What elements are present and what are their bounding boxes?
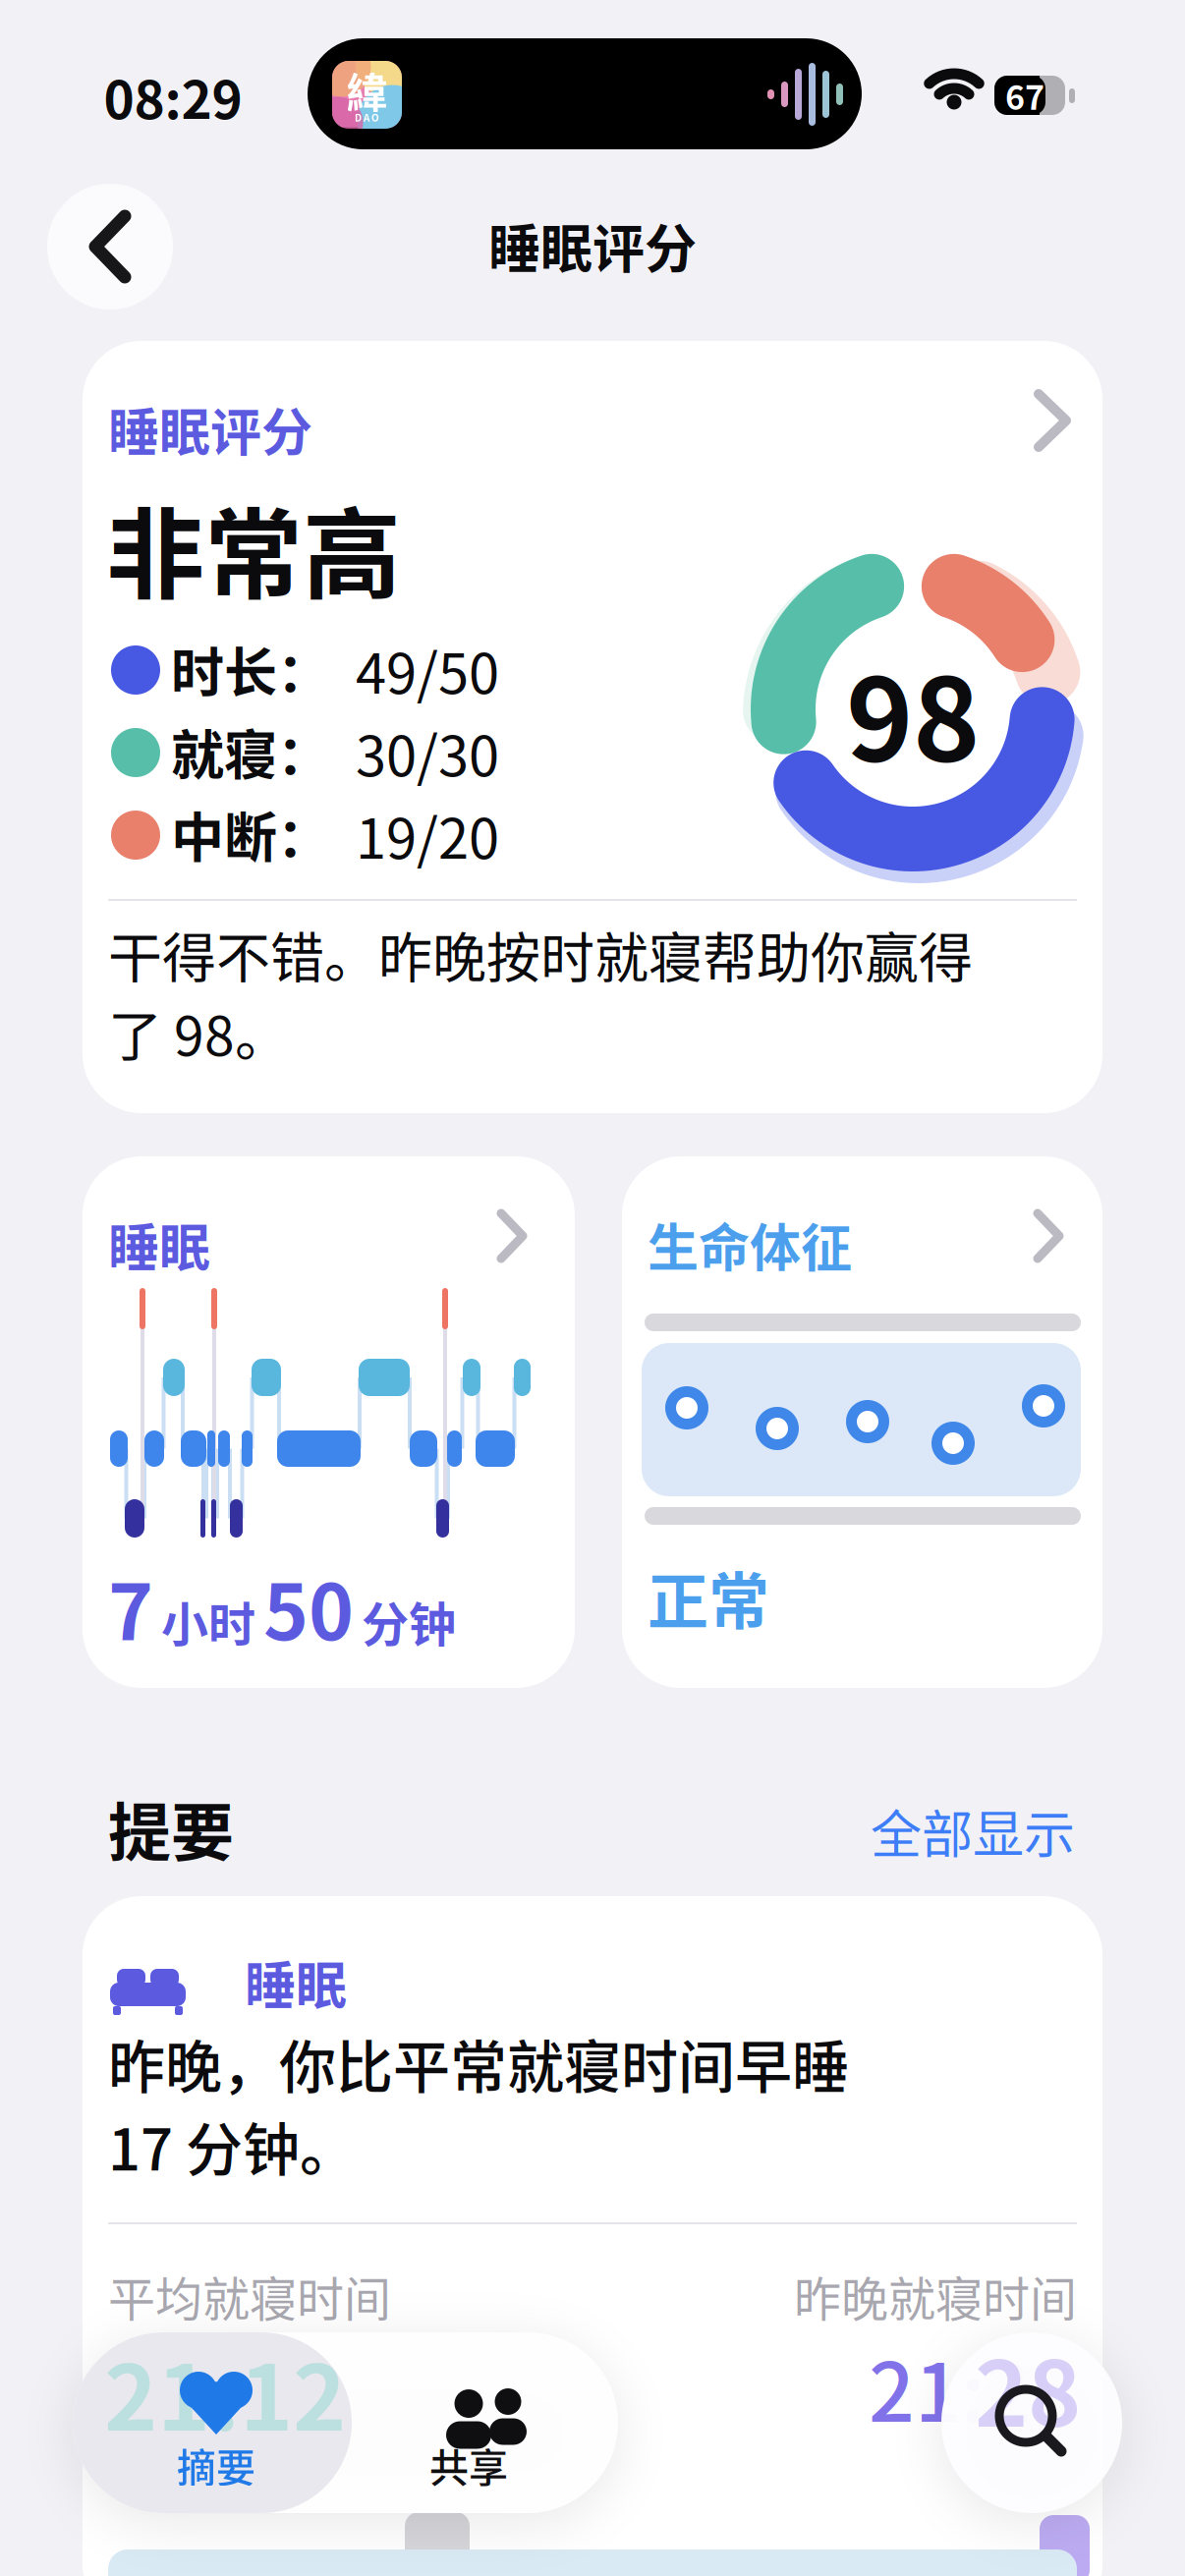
button[interactable]: 睡眠: [83, 1896, 1102, 2576]
staticText: 49/50: [356, 630, 499, 709]
button[interactable]: 睡眠: [83, 1156, 575, 1688]
staticText: 睡眠评分: [108, 392, 312, 466]
button[interactable]: 21:12: [73, 2332, 352, 2513]
button[interactable]: Back: [47, 184, 173, 309]
button[interactable]: 共享: [352, 2332, 618, 2513]
staticText: 昨晚，你比平常就寝时间早睡 17 分钟。: [108, 2022, 849, 2187]
staticText: 全部显示: [871, 1794, 1075, 1868]
staticText: 干得不错。昨晚按时就寝帮助你赢得 了 98。: [108, 915, 973, 1071]
staticText: 就寝：: [171, 713, 330, 790]
staticText: 7: [108, 1551, 153, 1662]
button[interactable]: 睡眠评分: [83, 341, 1102, 1113]
staticText: 分钟: [362, 1587, 456, 1655]
staticText: 提要: [108, 1782, 234, 1873]
staticText: 睡眠评分: [488, 208, 697, 283]
button[interactable]: 全部显示: [871, 1794, 1075, 1868]
staticText: 正常: [648, 1553, 769, 1641]
staticText: D A O: [355, 110, 379, 125]
staticText: 平均就寝时间: [108, 2262, 391, 2330]
staticText: 生命体征: [648, 1207, 852, 1281]
staticText: 小时: [161, 1587, 255, 1655]
staticText: 19/20: [356, 795, 499, 874]
staticText: 共享: [429, 2436, 508, 2493]
staticText: 时长：: [171, 631, 330, 708]
staticText: 非常高: [106, 476, 401, 619]
staticText: 21:12: [104, 2326, 346, 2457]
staticText: 緯: [346, 60, 388, 120]
staticText: 睡眠: [245, 1945, 347, 2019]
staticText: 中断：: [171, 796, 330, 873]
staticText: 睡眠: [108, 1207, 210, 1281]
staticText: 21:28: [869, 2328, 1077, 2445]
staticText: 30/30: [356, 712, 499, 792]
staticText: 28: [975, 2322, 1081, 2453]
staticText: 98: [846, 629, 980, 794]
staticText: 昨晚就寝时间: [794, 2262, 1077, 2330]
staticText: 摘要: [177, 2436, 255, 2493]
staticText: 50: [263, 1551, 354, 1662]
staticText: 08:29: [104, 59, 242, 134]
button[interactable]: 生命体征: [622, 1156, 1102, 1688]
staticText: 21:12: [108, 2328, 316, 2445]
staticText: 67: [1005, 71, 1044, 119]
button[interactable]: Search: [941, 2332, 1122, 2513]
